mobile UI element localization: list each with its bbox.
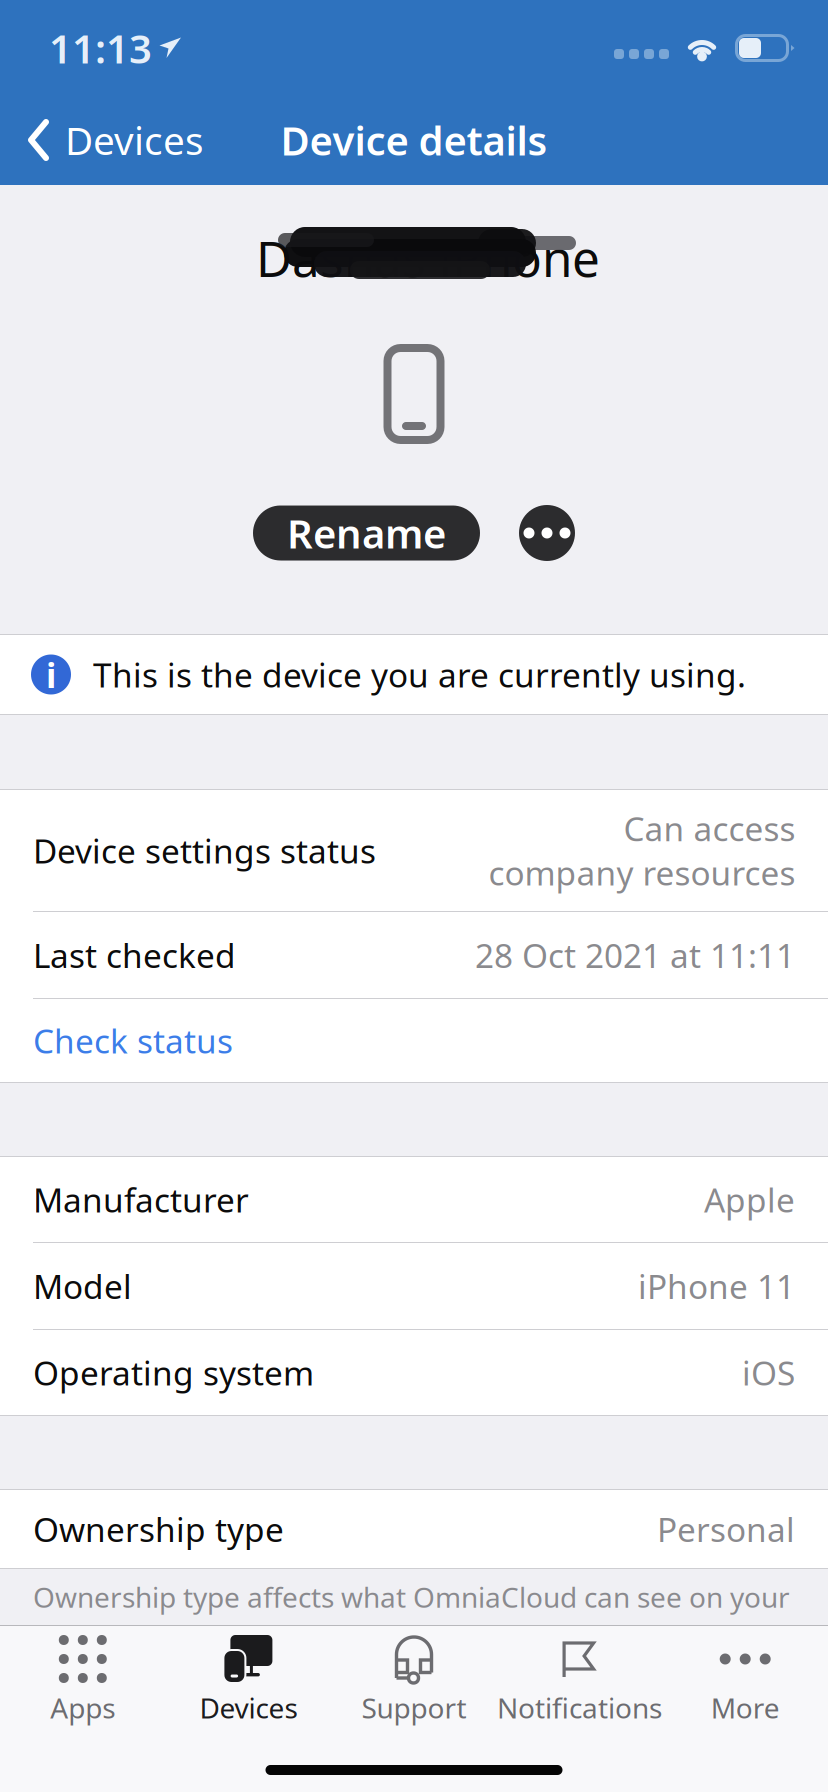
staticText: This is the device you are currently usi… (93, 652, 746, 697)
button[interactable]: Device settings status (0, 790, 828, 911)
staticText: Last checked (33, 933, 236, 977)
staticText: Check status (33, 1018, 233, 1063)
staticText: More (711, 1689, 780, 1726)
staticText: Operating system (33, 1350, 314, 1395)
staticText: Apps (50, 1689, 115, 1726)
button[interactable]: Devices (0, 102, 222, 178)
staticText: Can access company resources (488, 806, 795, 895)
button[interactable]: Rename (253, 505, 480, 560)
staticText: Personal (657, 1507, 795, 1551)
staticText: Device details (280, 113, 547, 166)
button[interactable]: Manufacturer (0, 1157, 828, 1242)
staticText: Model (33, 1264, 132, 1308)
staticText: iOS (742, 1350, 795, 1395)
button[interactable]: Apps (0, 1626, 166, 1736)
button[interactable]: More actions (519, 505, 575, 561)
staticText: 11:13 (49, 21, 152, 74)
button[interactable]: Last checked (0, 912, 828, 998)
staticText: Notifications (497, 1689, 662, 1726)
staticText: Devices (65, 114, 204, 166)
staticText: Ownership type (33, 1507, 284, 1551)
staticText: 28 Oct 2021 at 11:11 (475, 933, 795, 977)
staticText: Apple (704, 1177, 795, 1222)
staticText: Manufacturer (33, 1177, 249, 1222)
button[interactable]: Model (0, 1243, 828, 1329)
button[interactable]: Devices (166, 1626, 331, 1736)
staticText: Devices (199, 1689, 297, 1726)
staticText: Dashas iPhone (256, 225, 600, 290)
button[interactable]: Ownership type (0, 1490, 828, 1568)
button[interactable]: Operating system (0, 1330, 828, 1415)
staticText: iPhone 11 (638, 1264, 795, 1308)
staticText: Ownership type affects what OmniaCloud c… (33, 1578, 790, 1616)
staticText: i (46, 651, 56, 697)
button[interactable]: Notifications (497, 1626, 662, 1736)
button[interactable]: Support (331, 1626, 497, 1736)
button[interactable]: More (662, 1626, 828, 1736)
button[interactable]: Check status (0, 999, 828, 1082)
staticText: Support (361, 1689, 466, 1726)
staticText: Device settings status (33, 828, 376, 873)
staticText: Rename (287, 506, 446, 559)
